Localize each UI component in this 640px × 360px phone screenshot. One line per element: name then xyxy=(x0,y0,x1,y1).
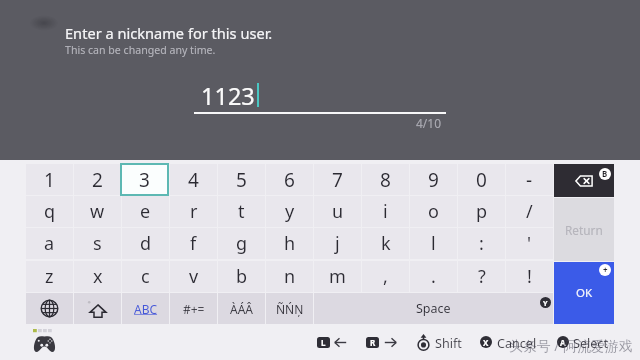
staticText: Shift xyxy=(435,335,462,352)
button[interactable]: 5 xyxy=(218,164,265,195)
button[interactable]: l xyxy=(410,228,457,259)
button[interactable]: m xyxy=(314,261,361,292)
button[interactable]: v xyxy=(170,261,217,292)
button[interactable]: 4 xyxy=(170,164,217,195)
button[interactable]: f xyxy=(170,228,217,259)
staticText: ' xyxy=(527,231,532,256)
button[interactable]: OK xyxy=(554,262,614,324)
button[interactable]: ABC xyxy=(122,293,169,324)
button[interactable]: Return xyxy=(554,198,614,261)
button[interactable]: : xyxy=(458,228,505,259)
staticText: 3 xyxy=(139,167,150,193)
staticText: Y xyxy=(543,298,548,308)
staticText: 4/10 xyxy=(416,115,442,131)
button[interactable]: ' xyxy=(506,228,553,259)
staticText: Cancel xyxy=(497,335,537,352)
staticText: Select xyxy=(573,335,608,352)
button[interactable]: ? xyxy=(458,261,505,292)
staticText: a xyxy=(44,231,55,256)
button[interactable]: p xyxy=(458,196,505,227)
staticText: Enter a nickname for this user. xyxy=(65,23,273,43)
button[interactable]: - xyxy=(506,164,553,195)
button[interactable]: d xyxy=(122,228,169,259)
button[interactable]: q xyxy=(26,196,73,227)
staticText: 2 xyxy=(92,167,103,193)
staticText: u xyxy=(332,199,344,224)
staticText: c xyxy=(141,264,150,289)
button[interactable]: Shift xyxy=(74,293,121,324)
button[interactable]: Backspace xyxy=(554,164,614,197)
staticText: #+= xyxy=(183,301,205,317)
staticText: OK xyxy=(576,285,593,301)
staticText: / xyxy=(526,199,533,224)
staticText: f xyxy=(190,231,197,256)
staticText: 7 xyxy=(332,167,343,193)
staticText: i xyxy=(383,199,388,224)
staticText: Space xyxy=(416,300,451,317)
staticText: + xyxy=(603,265,608,276)
button[interactable]: w xyxy=(74,196,121,227)
staticText: B xyxy=(602,169,608,180)
staticText: X xyxy=(483,337,489,348)
button[interactable]: h xyxy=(266,228,313,259)
staticText: t xyxy=(238,199,245,224)
staticText: s xyxy=(93,231,102,256)
button[interactable]: ! xyxy=(506,261,553,292)
staticText: 9 xyxy=(428,167,439,193)
button[interactable]: 3 xyxy=(120,163,169,196)
button[interactable]: z xyxy=(26,261,73,292)
staticText: e xyxy=(140,199,151,224)
staticText: : xyxy=(479,231,484,256)
button[interactable]: n xyxy=(266,261,313,292)
staticText: 头条号 / 阿流爱游戏 xyxy=(509,336,633,355)
staticText: v xyxy=(189,264,199,289)
staticText: h xyxy=(284,231,296,256)
button[interactable]: y xyxy=(266,196,313,227)
staticText: d xyxy=(140,231,152,256)
button[interactable]: i xyxy=(362,196,409,227)
button[interactable]: u xyxy=(314,196,361,227)
staticText: j xyxy=(335,231,340,256)
button[interactable]: g xyxy=(218,228,265,259)
button[interactable]: . xyxy=(410,261,457,292)
button[interactable]: j xyxy=(314,228,361,259)
button[interactable]: ÀÁÂ xyxy=(218,293,265,324)
button[interactable]: , xyxy=(362,261,409,292)
staticText: , xyxy=(383,264,388,289)
button[interactable]: r xyxy=(170,196,217,227)
button[interactable]: 1 xyxy=(26,164,73,195)
button[interactable]: / xyxy=(506,196,553,227)
button[interactable]: s xyxy=(74,228,121,259)
staticText: ABC xyxy=(134,301,158,317)
staticText: This can be changed any time. xyxy=(65,43,216,57)
staticText: l xyxy=(431,231,436,256)
button[interactable]: Change language xyxy=(26,293,73,324)
staticText: 1 xyxy=(44,167,55,193)
button[interactable]: o xyxy=(410,196,457,227)
staticText: A xyxy=(560,337,566,348)
staticText: - xyxy=(526,167,533,193)
staticText: z xyxy=(45,264,54,289)
button[interactable]: Space xyxy=(314,293,553,324)
button[interactable]: ÑŃŅ xyxy=(266,293,313,324)
staticText: . xyxy=(431,264,436,289)
button[interactable]: 2 xyxy=(74,164,121,195)
staticText: r xyxy=(190,199,198,224)
staticText: k xyxy=(381,231,391,256)
staticText: b xyxy=(236,264,248,289)
button[interactable]: #+= xyxy=(170,293,217,324)
button[interactable]: 0 xyxy=(458,164,505,195)
button[interactable]: 9 xyxy=(410,164,457,195)
staticText: g xyxy=(236,231,248,256)
button[interactable]: 8 xyxy=(362,164,409,195)
button[interactable]: e xyxy=(122,196,169,227)
button[interactable]: c xyxy=(122,261,169,292)
button[interactable]: k xyxy=(362,228,409,259)
button[interactable]: 6 xyxy=(266,164,313,195)
button[interactable]: a xyxy=(26,228,73,259)
staticText: q xyxy=(44,199,56,224)
button[interactable]: x xyxy=(74,261,121,292)
button[interactable]: t xyxy=(218,196,265,227)
button[interactable]: b xyxy=(218,261,265,292)
button[interactable]: 7 xyxy=(314,164,361,195)
